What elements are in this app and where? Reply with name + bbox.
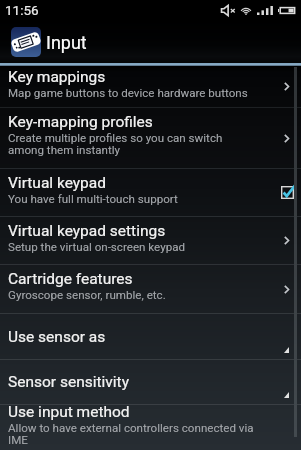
button[interactable]: Use sensor as <box>0 314 301 359</box>
button[interactable]: Key mappings <box>0 66 301 107</box>
other: More options <box>284 392 289 398</box>
staticText: Cartridge features <box>8 270 133 288</box>
button[interactable]: Cartridge features <box>0 265 301 313</box>
other: Open <box>284 285 289 294</box>
staticText: Use input method <box>8 403 130 421</box>
staticText: 11:56 <box>5 2 39 18</box>
staticText: Map game buttons to device hardware butt… <box>8 86 248 100</box>
button[interactable]: Use input method <box>0 405 301 450</box>
other: Open <box>284 82 289 91</box>
other: Open <box>284 236 289 245</box>
button[interactable]: Virtual keypad settings <box>0 217 301 264</box>
staticText: Use sensor as <box>8 328 106 346</box>
staticText: Create multiple profiles so you can swit… <box>8 131 257 157</box>
staticText: Key mappings <box>8 68 106 86</box>
staticText: Input <box>46 32 87 53</box>
staticText: Allow to have external controllers conne… <box>8 421 261 447</box>
button[interactable]: Sensor sensitivity <box>0 360 301 404</box>
other: Enabled <box>281 186 294 199</box>
staticText: Virtual keypad settings <box>8 222 166 240</box>
other: Open <box>284 134 289 143</box>
staticText: You have full multi-touch support <box>8 192 178 206</box>
staticText: Sensor sensitivity <box>8 373 129 391</box>
button[interactable]: Virtual keypad <box>0 169 301 216</box>
other: More options <box>284 347 289 353</box>
staticText: Setup the virtual on-screen keypad <box>8 240 185 254</box>
staticText: Gyroscope sensor, rumble, etc. <box>8 288 166 302</box>
staticText: Key-mapping profiles <box>8 113 153 131</box>
staticText: Virtual keypad <box>8 174 106 192</box>
button[interactable]: Key-mapping profiles <box>0 108 301 168</box>
